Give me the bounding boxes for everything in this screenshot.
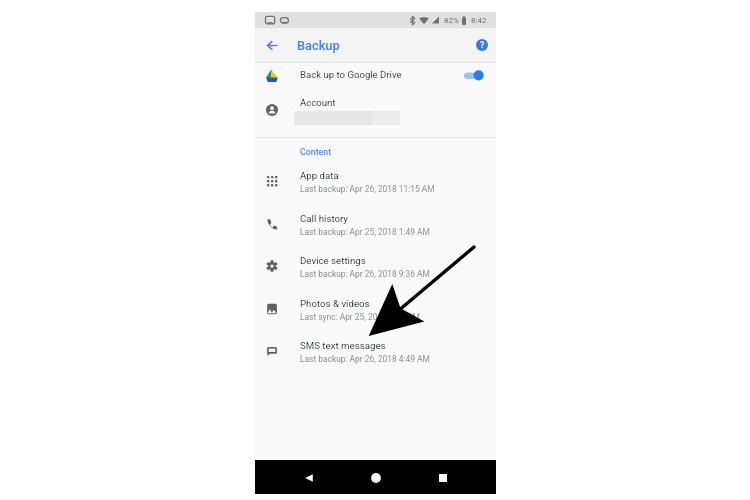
staticText: Content — [300, 147, 332, 157]
button[interactable]: Call history — [255, 205, 496, 247]
staticText: 8:42 — [471, 16, 487, 25]
button[interactable]: Back — [287, 466, 331, 490]
button[interactable]: Recent apps — [421, 466, 465, 490]
staticText: SMS text messages — [300, 340, 386, 351]
button[interactable]: Home — [354, 466, 398, 490]
staticText: 82% — [444, 16, 459, 25]
staticText: ? — [480, 40, 485, 51]
staticText: Account — [300, 97, 336, 108]
staticText: Last backup: Apr 26, 2018 4:49 AM — [300, 354, 430, 364]
staticText: Last sync: Apr 25, 2018 9:21 PM — [300, 312, 420, 322]
staticText: Last backup: Apr 26, 2018 11:15 AM — [300, 184, 435, 194]
button[interactable]: Navigate up — [260, 29, 284, 61]
staticText: Back up to Google Drive — [300, 69, 402, 80]
button[interactable]: Help — [467, 29, 496, 61]
staticText: Device settings — [300, 255, 366, 266]
button[interactable]: SMS text messages — [255, 332, 496, 374]
staticText: Photos & videos — [300, 298, 370, 309]
button[interactable]: Account — [255, 92, 496, 137]
staticText: Call history — [300, 213, 348, 224]
staticText: Backup — [297, 38, 340, 53]
staticText: Last backup: Apr 25, 2018 1:49 AM — [300, 227, 430, 237]
button[interactable]: Back up to Google Drive — [255, 63, 496, 92]
button[interactable]: Device settings — [255, 247, 496, 289]
button[interactable]: App data — [255, 162, 496, 204]
staticText: App data — [300, 170, 339, 181]
button[interactable]: Photos & videos — [255, 290, 496, 332]
staticText: Last backup: Apr 26, 2018 9:36 AM — [300, 269, 430, 279]
